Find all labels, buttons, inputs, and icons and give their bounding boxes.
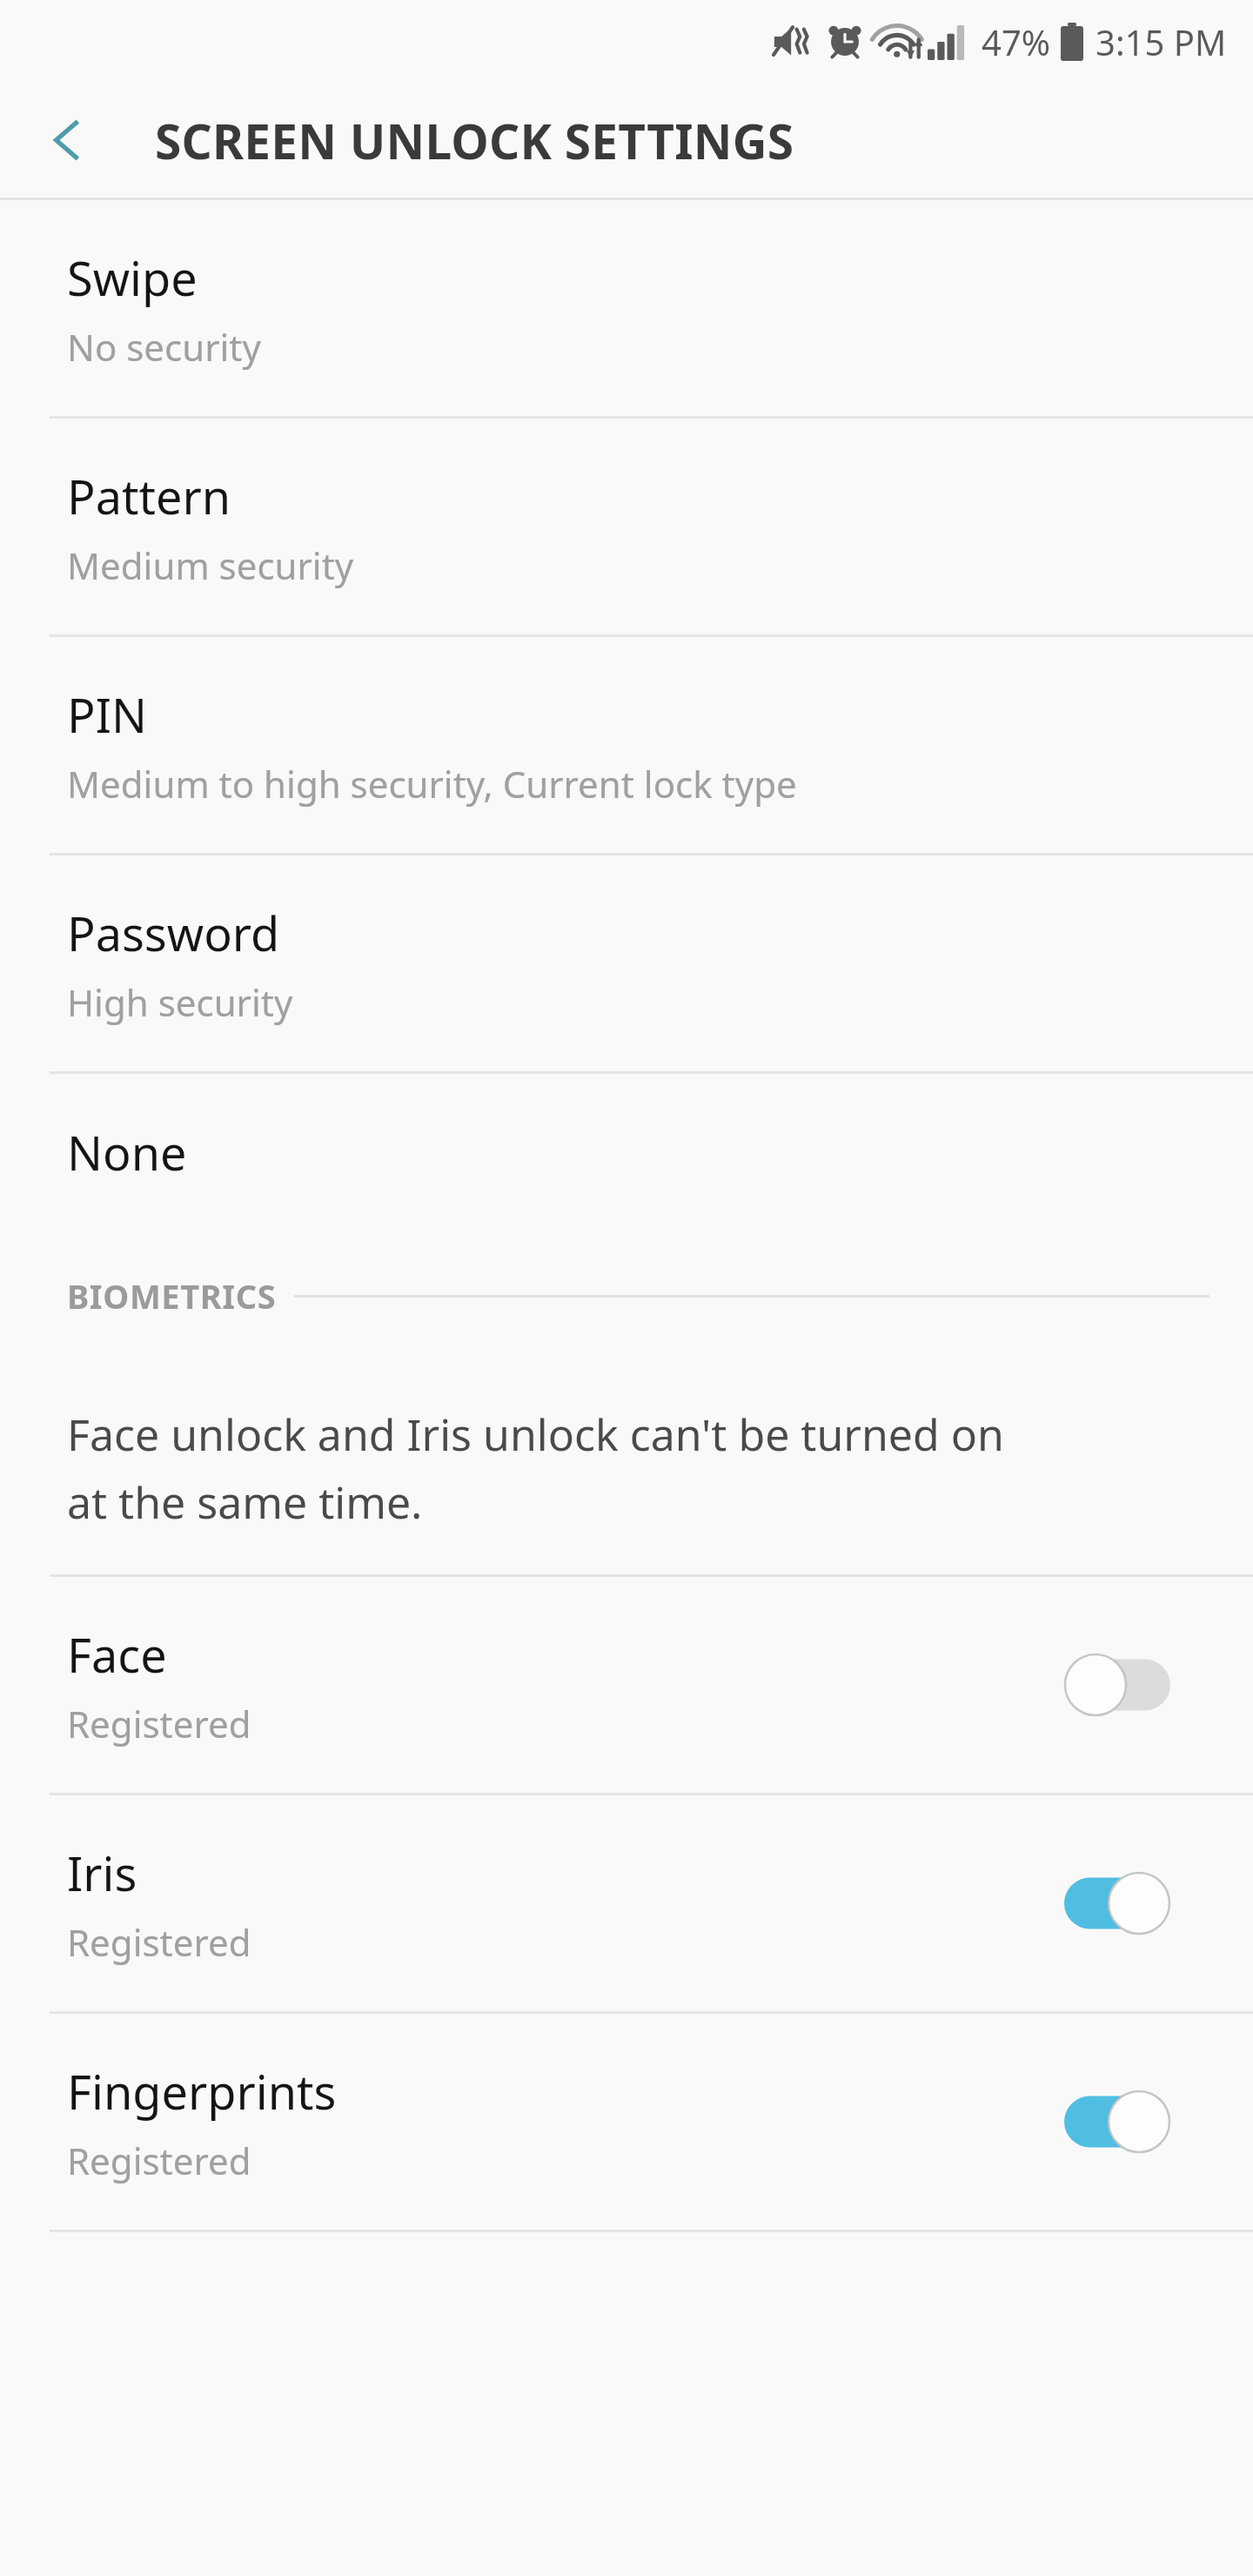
staticText: High security <box>67 977 293 1027</box>
staticText: Password <box>67 901 280 965</box>
staticText: Face unlock and Iris unlock can't be tur… <box>67 1405 1004 1532</box>
button[interactable]: Fingerprints <box>0 2014 1253 2230</box>
staticText: Face <box>67 1622 167 1687</box>
staticText: Swipe <box>67 245 198 310</box>
button[interactable]: Toggle on <box>1056 1864 1178 1942</box>
staticText: Pattern <box>67 464 231 528</box>
staticText: PIN <box>67 682 148 747</box>
button[interactable]: Back <box>19 92 115 188</box>
button[interactable]: Pattern <box>0 419 1253 634</box>
staticText: No security <box>67 322 261 372</box>
button[interactable]: None <box>0 1074 1253 1231</box>
staticText: Registered <box>67 1917 251 1967</box>
staticText: 3:15 PM <box>1096 18 1227 65</box>
button[interactable]: Iris <box>0 1795 1253 2011</box>
staticText: Registered <box>67 2136 251 2185</box>
staticText: Medium to high security, Current lock ty… <box>67 759 797 808</box>
staticText: Fingerprints <box>67 2059 337 2123</box>
button[interactable]: Toggle on <box>1056 2083 1178 2161</box>
staticText: None <box>67 1120 187 1184</box>
button[interactable]: Face <box>0 1577 1253 1793</box>
button[interactable]: Toggle off <box>1056 1646 1178 1724</box>
staticText: Iris <box>67 1841 137 1905</box>
staticText: Registered <box>67 1699 251 1748</box>
button[interactable]: PIN <box>0 637 1253 853</box>
staticText: BIOMETRICS <box>67 1273 277 1318</box>
staticText: SCREEN UNLOCK SETTINGS <box>155 108 794 173</box>
staticText: 47% <box>982 18 1050 65</box>
button[interactable]: Swipe <box>0 200 1253 416</box>
button[interactable]: Password <box>0 855 1253 1071</box>
staticText: Medium security <box>67 540 354 590</box>
